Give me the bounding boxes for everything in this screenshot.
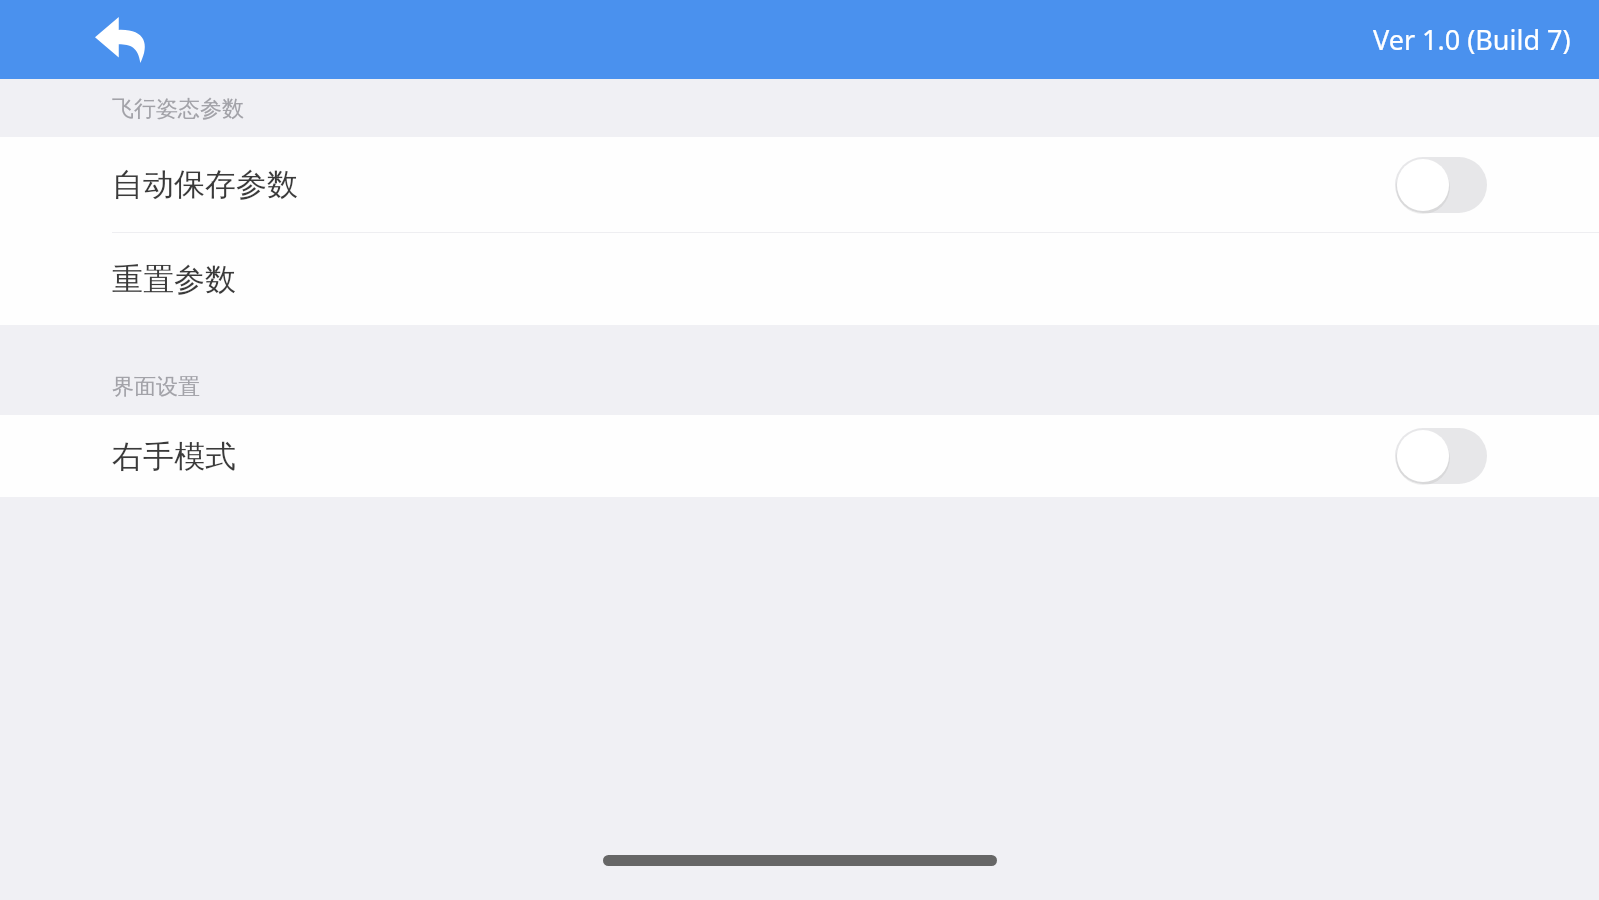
staticText: 重置参数 [112, 260, 236, 299]
button[interactable]: Toggle [1395, 428, 1487, 484]
staticText: 界面设置 [112, 373, 200, 401]
button[interactable]: 重置参数 [0, 233, 1599, 325]
staticText: 右手模式 [112, 437, 236, 476]
button[interactable]: 右手模式 [0, 415, 1599, 497]
button[interactable]: 自动保存参数 [0, 137, 1599, 232]
staticText: 自动保存参数 [112, 165, 298, 204]
button[interactable]: Toggle [1395, 157, 1487, 213]
staticText: Ver 1.0 (Build 7) [1373, 21, 1571, 58]
button[interactable]: Back [72, 0, 172, 79]
staticText: 飞行姿态参数 [112, 95, 244, 123]
